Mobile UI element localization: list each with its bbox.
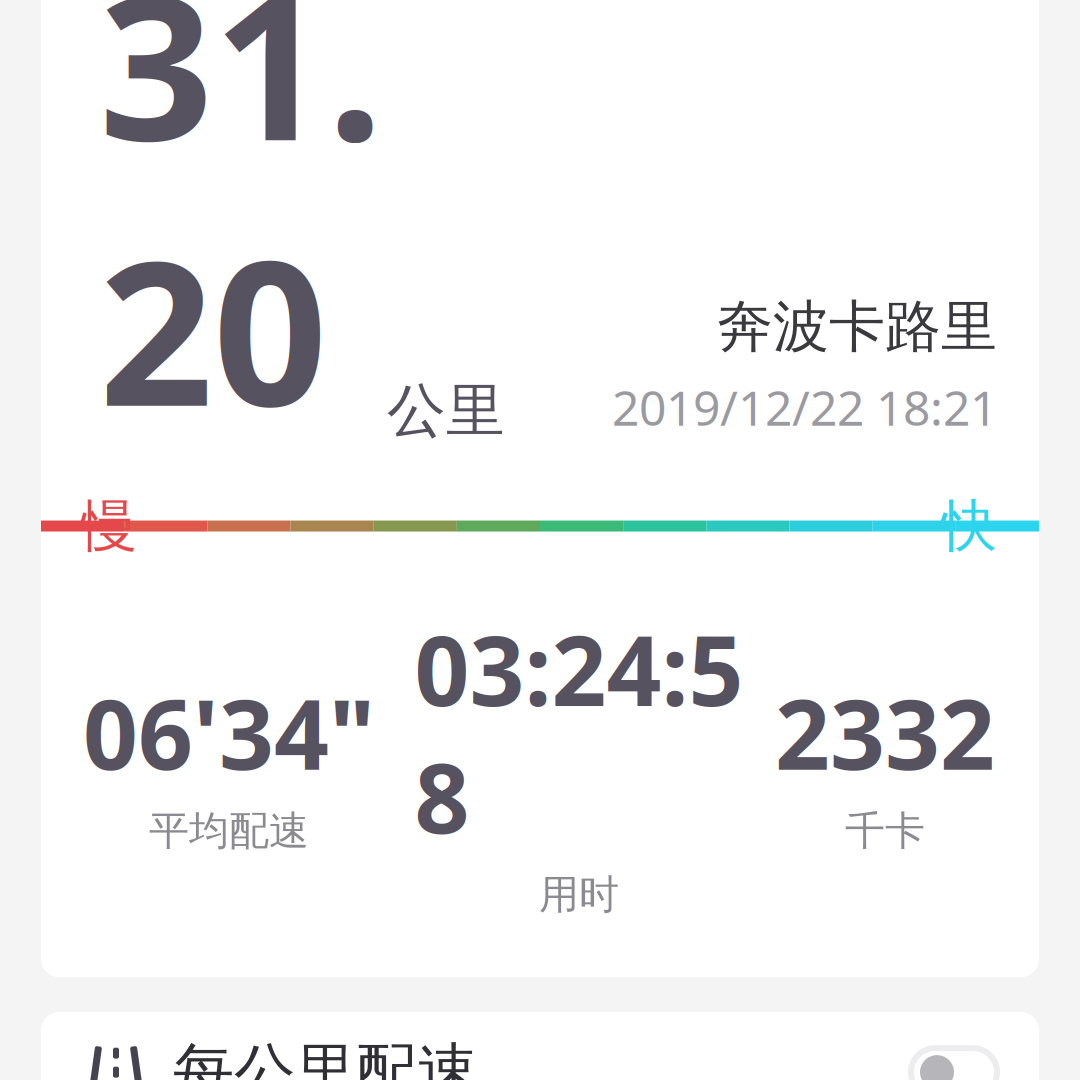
- staticText: 03:24:58: [414, 605, 743, 860]
- staticText: 公里: [387, 375, 505, 447]
- staticText: 千卡: [845, 806, 925, 855]
- staticText: 快: [941, 492, 997, 560]
- button[interactable]: Toggle per-kilometre pace: [911, 1048, 997, 1080]
- staticText: 2332: [775, 669, 995, 796]
- staticText: 06'34": [83, 669, 375, 796]
- staticText: 慢: [81, 492, 137, 560]
- staticText: 奔波卡路里: [717, 292, 997, 361]
- staticText: 31.20: [99, 0, 383, 461]
- staticText: 用时: [539, 870, 619, 919]
- staticText: 平均配速: [149, 806, 309, 855]
- staticText: 每公里配速: [173, 1034, 478, 1080]
- staticText: 2019/12/22 18:21: [612, 375, 997, 439]
